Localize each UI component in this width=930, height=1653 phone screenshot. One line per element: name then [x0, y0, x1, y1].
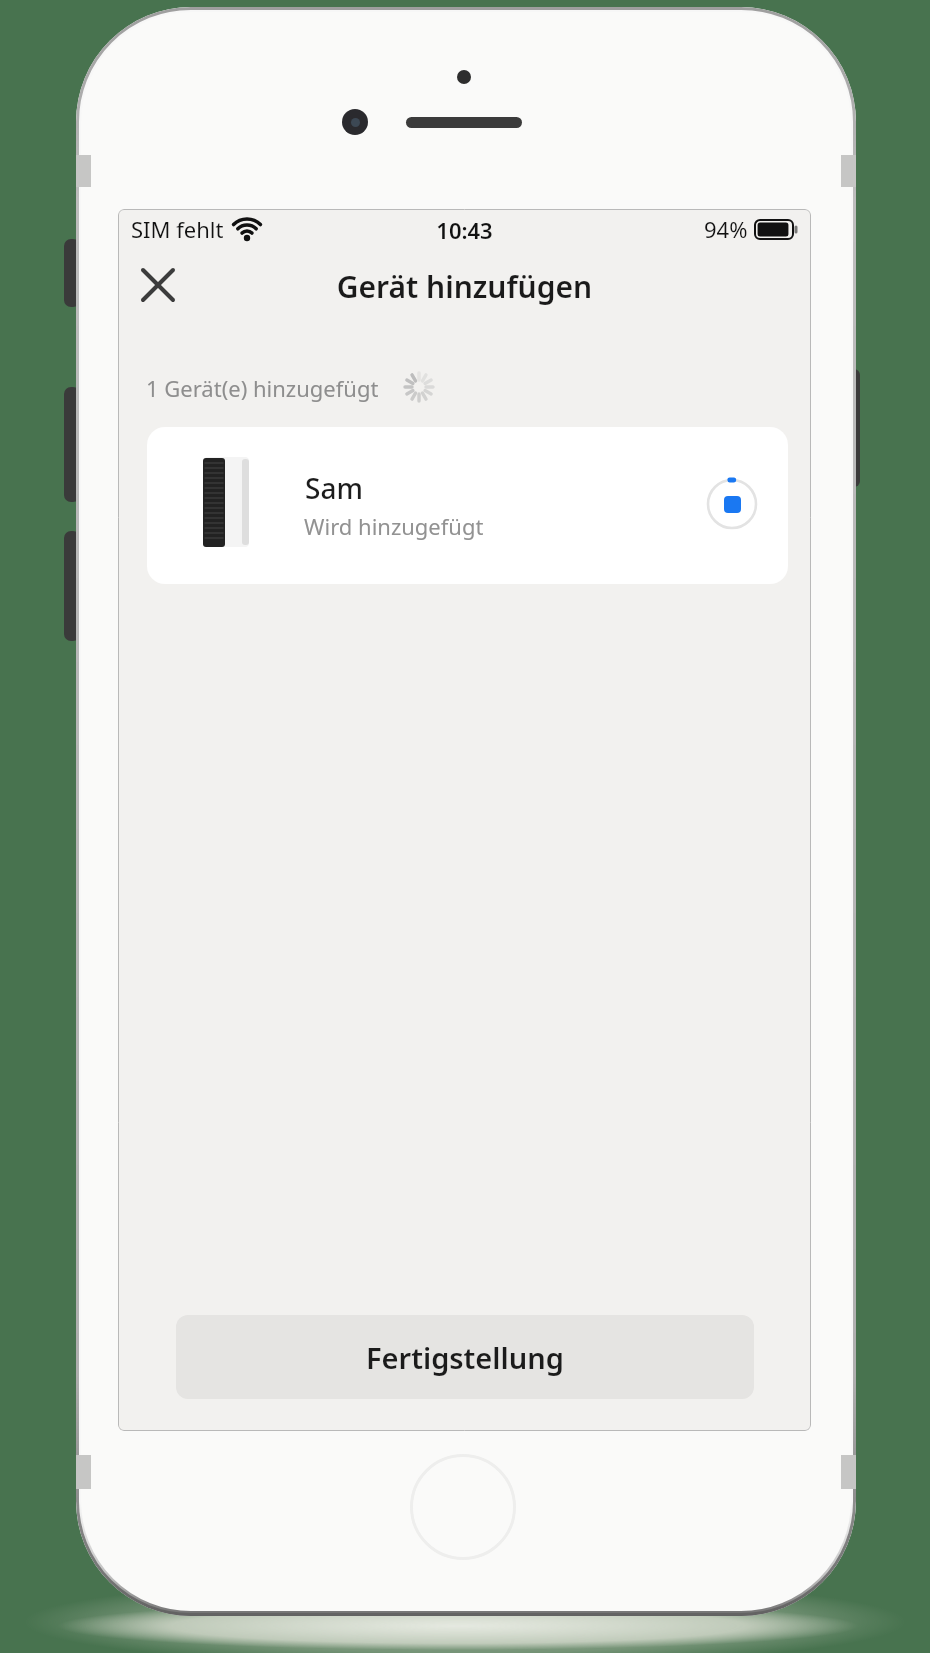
staticText: 10:43 [118, 215, 811, 245]
staticText: Sam [305, 469, 363, 507]
staticText: SIM fehlt [131, 214, 224, 244]
button[interactable] [141, 268, 175, 302]
staticText: Fertigstellung [366, 1338, 564, 1377]
staticText: Wird hinzugefügt [304, 511, 484, 541]
button[interactable]: Sam [147, 427, 788, 584]
staticText: 94% [704, 214, 748, 244]
staticText: 1 Gerät(e) hinzugefügt [146, 373, 379, 403]
button[interactable] [707, 479, 757, 529]
button[interactable]: Fertigstellung [176, 1315, 754, 1399]
staticText: Gerät hinzufügen [118, 266, 811, 307]
